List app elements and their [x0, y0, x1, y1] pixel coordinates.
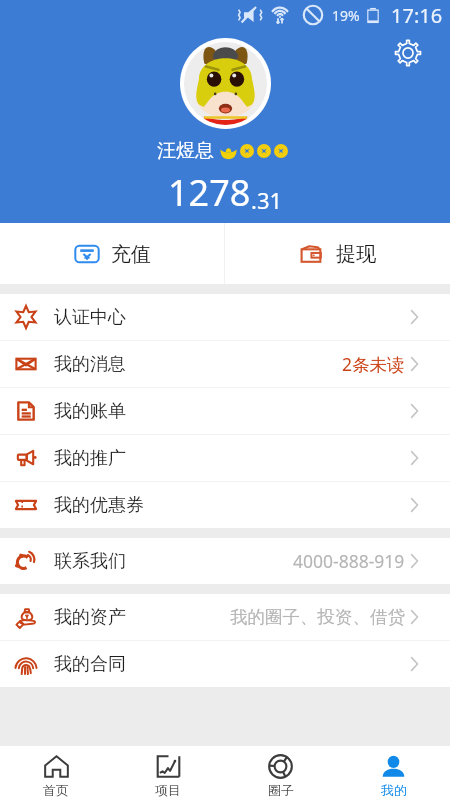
button[interactable]: Settings	[394, 39, 422, 67]
staticText: 我的推广	[54, 447, 126, 470]
button[interactable]: 我的账单	[0, 388, 450, 434]
staticText: 我的账单	[54, 400, 126, 423]
button[interactable]: 认证中心	[0, 294, 450, 340]
staticText: 汪煜息	[157, 139, 214, 163]
button[interactable]: 圈子	[224, 746, 337, 800]
staticText: 联系我们	[54, 550, 126, 573]
staticText: 我的合同	[54, 653, 126, 676]
button[interactable]: 首页	[0, 746, 112, 800]
button[interactable]: 项目	[112, 746, 224, 800]
staticText: 首页	[43, 782, 69, 798]
button[interactable]: 提现	[225, 223, 450, 284]
button[interactable]: 我的优惠券	[0, 482, 450, 528]
staticText: 提现	[336, 242, 376, 267]
staticText: 我的消息	[54, 353, 126, 376]
staticText: 我的优惠券	[54, 494, 144, 517]
staticText: .31	[251, 185, 283, 215]
staticText: 充值	[111, 242, 151, 267]
staticText: 我的圈子、投资、借贷	[230, 606, 405, 628]
staticText: 17:16	[391, 2, 443, 29]
staticText: 1278	[168, 168, 251, 217]
button[interactable]: 我的资产	[0, 594, 450, 640]
button[interactable]: 我的推广	[0, 435, 450, 481]
button[interactable]: 我的合同	[0, 641, 450, 687]
staticText: 项目	[155, 782, 181, 798]
staticText: 认证中心	[54, 306, 126, 329]
button[interactable]: 联系我们	[0, 538, 450, 584]
staticText: 我的资产	[54, 606, 126, 629]
staticText: 我的	[381, 782, 407, 798]
staticText: 2条未读	[342, 352, 405, 376]
button[interactable]: 我的消息	[0, 341, 450, 387]
staticText: 19%	[332, 6, 360, 25]
button[interactable]: Avatar	[180, 38, 271, 129]
button[interactable]: 我的	[337, 746, 450, 800]
staticText: 圈子	[268, 782, 294, 798]
staticText: 4000-888-919	[293, 549, 405, 573]
button[interactable]: 充值	[0, 223, 224, 284]
